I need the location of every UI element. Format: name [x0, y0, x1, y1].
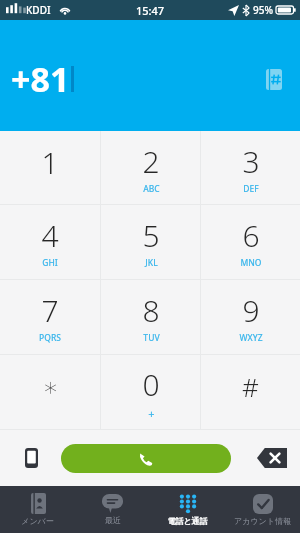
button[interactable]: 電話と通話: [150, 486, 225, 533]
button[interactable]: 0: [101, 355, 200, 429]
button[interactable]: Call: [61, 444, 231, 473]
staticText: 95%: [253, 3, 273, 17]
staticText: TUV: [143, 332, 160, 344]
staticText: KDDI: [26, 3, 51, 17]
staticText: PQRS: [39, 332, 61, 344]
button[interactable]: 7: [0, 280, 100, 354]
staticText: 1: [41, 142, 59, 183]
staticText: 3: [242, 141, 260, 182]
staticText: GHI: [42, 257, 58, 269]
staticText: #: [242, 369, 259, 404]
button[interactable]: Contacts: [259, 64, 289, 94]
staticText: 電話と通話: [167, 516, 208, 526]
staticText: 6: [242, 215, 260, 256]
button[interactable]: 2: [101, 131, 200, 204]
staticText: ABC: [143, 183, 160, 195]
button[interactable]: アカウント情報: [225, 486, 300, 533]
staticText: ∗: [42, 372, 59, 402]
staticText: メンバー: [21, 516, 54, 526]
button[interactable]: #: [201, 355, 300, 429]
staticText: +: [148, 406, 155, 421]
staticText: 8: [142, 290, 160, 331]
staticText: 7: [41, 290, 59, 331]
button[interactable]: 3: [201, 131, 300, 204]
staticText: MNO: [240, 257, 262, 269]
button[interactable]: 4: [0, 205, 100, 279]
staticText: WXYZ: [239, 332, 263, 344]
staticText: 2: [142, 141, 160, 182]
staticText: 5: [142, 215, 160, 256]
staticText: アカウント情報: [234, 516, 291, 526]
button[interactable]: 5: [101, 205, 200, 279]
button[interactable]: Switch line: [16, 443, 46, 473]
button[interactable]: 1: [0, 131, 100, 204]
staticText: +81: [11, 56, 70, 102]
staticText: 15:47: [136, 3, 165, 18]
button[interactable]: 最近: [75, 486, 150, 533]
staticText: 4: [41, 215, 59, 256]
staticText: JKL: [145, 257, 158, 269]
staticText: 9: [242, 290, 260, 331]
button[interactable]: メンバー: [0, 486, 75, 533]
button[interactable]: ∗: [0, 355, 100, 429]
staticText: DEF: [243, 183, 259, 195]
button[interactable]: Backspace: [252, 443, 292, 473]
staticText: 最近: [105, 515, 121, 525]
button[interactable]: 8: [101, 280, 200, 354]
staticText: 0: [142, 364, 160, 405]
button[interactable]: 9: [201, 280, 300, 354]
button[interactable]: 6: [201, 205, 300, 279]
